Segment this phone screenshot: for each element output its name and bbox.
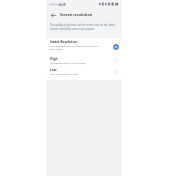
button[interactable]: High [46,55,122,66]
staticText: Maximum clarity (1240 x 2800) [50,61,86,64]
button[interactable]: Low [46,66,122,77]
staticText: Smart Resolution [50,40,78,44]
staticText: The quality of pictures on the screen ca… [50,23,116,31]
staticText: Save power (945 x 2100) [50,72,79,75]
staticText: 8:48 [59,2,66,6]
staticText: Screen resolution [60,12,93,17]
staticText: Low [50,68,57,72]
staticText: Automatically adjust screen resolution t… [50,44,98,47]
button[interactable]: Back [48,10,58,20]
staticText: save power [50,47,64,50]
button[interactable]: Smart Resolution [46,38,122,55]
staticText: High [50,57,58,61]
